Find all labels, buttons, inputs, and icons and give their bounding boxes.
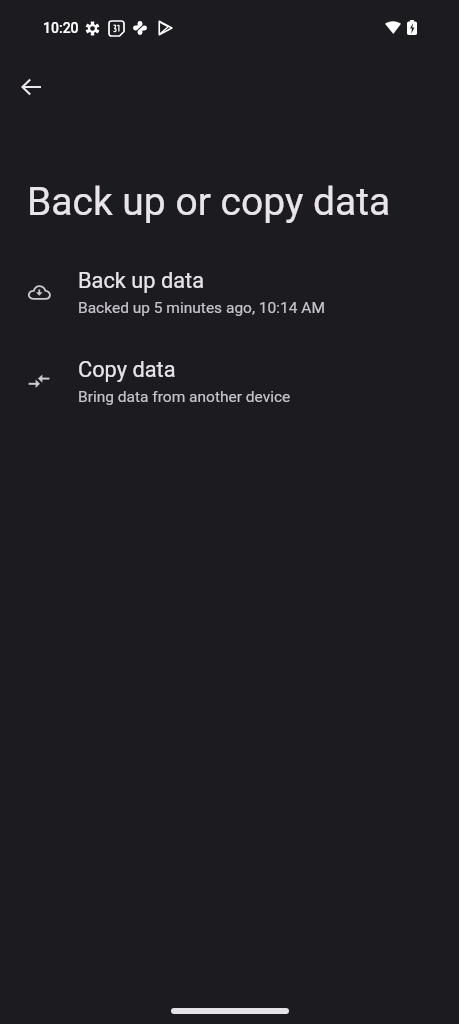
staticText: Bring data from another device	[78, 388, 291, 406]
staticText: Back up or copy data	[27, 179, 391, 225]
button[interactable]: Copy data	[0, 345, 459, 418]
staticText: 10:20	[43, 20, 79, 36]
button[interactable]: Navigate up	[7, 63, 55, 111]
button[interactable]: Back up data	[0, 256, 459, 329]
staticText: Back up data	[78, 268, 205, 294]
staticText: Copy data	[78, 357, 176, 383]
staticText: Backed up 5 minutes ago, 10:14 AM	[78, 299, 325, 317]
